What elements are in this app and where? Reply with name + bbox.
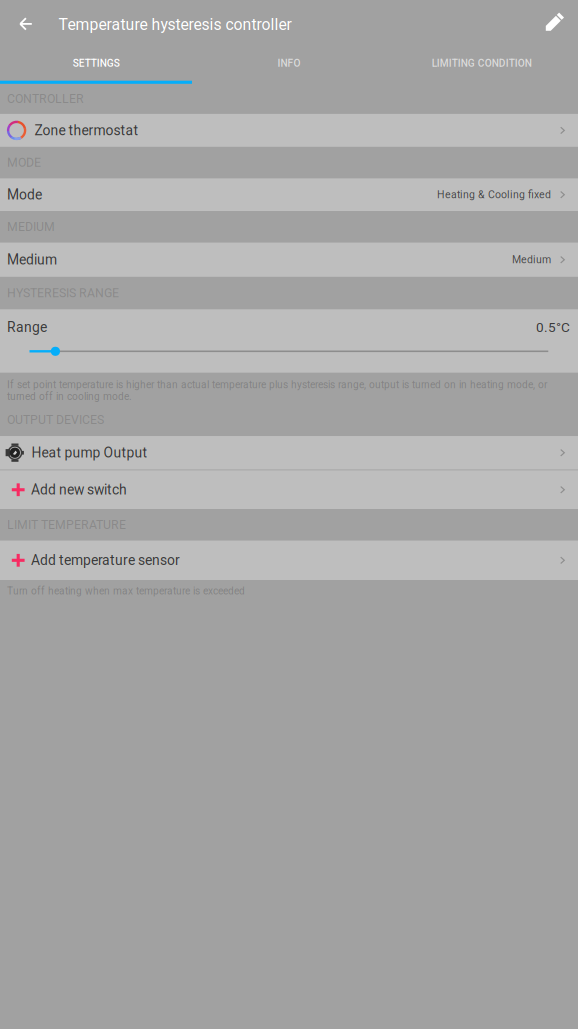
button[interactable]: Edit bbox=[532, 0, 578, 46]
staticText: Medium bbox=[512, 254, 551, 266]
staticText: Add temperature sensor bbox=[31, 552, 180, 568]
staticText: LIMITING CONDITION bbox=[432, 57, 532, 69]
button[interactable]: LIMITING CONDITION bbox=[385, 46, 578, 81]
staticText: LIMIT TEMPERATURE bbox=[7, 518, 126, 532]
staticText: Heat pump Output bbox=[32, 445, 148, 461]
staticText: Mode bbox=[7, 187, 42, 203]
button[interactable]: SETTINGS bbox=[0, 46, 193, 81]
staticText: If set point temperature is higher than … bbox=[7, 379, 547, 402]
button[interactable]: INFO bbox=[193, 46, 385, 81]
staticText: Range bbox=[7, 319, 47, 335]
staticText: SETTINGS bbox=[73, 57, 120, 69]
staticText: INFO bbox=[277, 57, 300, 69]
button[interactable]: Back bbox=[0, 0, 46, 46]
staticText: Zone thermostat bbox=[35, 122, 139, 139]
button[interactable]: Add temperature sensor bbox=[0, 540, 578, 580]
staticText: Temperature hysteresis controller bbox=[59, 15, 292, 34]
staticText: 0.5°C bbox=[536, 319, 570, 335]
button[interactable]: Zone thermostat bbox=[0, 114, 578, 147]
staticText: Medium bbox=[7, 252, 57, 268]
staticText: MODE bbox=[7, 155, 41, 170]
staticText: CONTROLLER bbox=[7, 92, 84, 106]
button[interactable]: Add new switch bbox=[0, 470, 578, 509]
staticText: OUTPUT DEVICES bbox=[7, 413, 104, 427]
staticText: Add new switch bbox=[31, 482, 127, 498]
staticText: Turn off heating when max temperature is… bbox=[7, 585, 245, 597]
staticText: Heating & Cooling fixed bbox=[437, 188, 551, 201]
button[interactable]: Heat pump Output bbox=[0, 436, 578, 469]
button[interactable]: Medium bbox=[0, 243, 578, 277]
staticText: MEDIUM bbox=[7, 220, 55, 234]
staticText: HYSTERESIS RANGE bbox=[7, 286, 119, 300]
button[interactable]: Mode bbox=[0, 178, 578, 211]
